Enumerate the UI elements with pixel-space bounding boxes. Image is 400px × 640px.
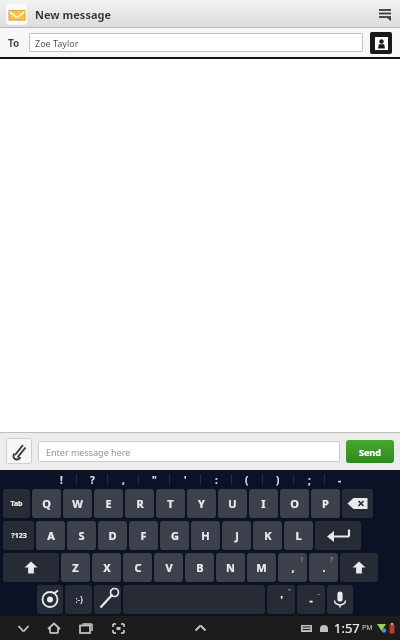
button[interactable]: - [325, 470, 355, 489]
button[interactable]: L [284, 521, 313, 550]
staticText: : [215, 473, 218, 487]
button[interactable]: Q [32, 489, 61, 518]
staticText: H [201, 528, 210, 543]
button[interactable]: G [160, 521, 189, 550]
button[interactable]: ?123 [3, 521, 34, 550]
button[interactable]: P [311, 489, 340, 518]
button[interactable]: Enter message here [38, 441, 340, 462]
staticText: Send [359, 446, 381, 458]
staticText: ! [301, 555, 303, 565]
button[interactable]: U [218, 489, 247, 518]
button[interactable]: E [94, 489, 123, 518]
staticText: V [165, 560, 173, 575]
button[interactable]: N [216, 553, 245, 582]
staticText: Q [42, 496, 51, 511]
button[interactable]: Zoe Taylor [29, 33, 363, 52]
staticText: C [134, 560, 142, 575]
button[interactable]: Screenshot [102, 616, 134, 640]
button[interactable]: B [185, 553, 214, 582]
staticText: B [196, 560, 204, 575]
button[interactable]: , [278, 553, 307, 582]
button[interactable]: Key [315, 521, 361, 550]
staticText: - [309, 593, 313, 607]
button[interactable]: - [297, 585, 325, 614]
staticText: K [264, 528, 272, 543]
button[interactable]: R [125, 489, 154, 518]
button[interactable]: Back [8, 616, 38, 640]
staticText: R [136, 496, 144, 511]
button[interactable]: H [191, 521, 220, 550]
staticText: O [290, 496, 299, 511]
button[interactable]: ) [263, 470, 293, 489]
button[interactable]: Messaging [6, 4, 27, 25]
button[interactable]: ? [77, 470, 107, 489]
button[interactable]: Hide keyboard [185, 616, 215, 640]
button[interactable]: Choose contact [370, 32, 392, 54]
button[interactable]: Key [340, 553, 378, 582]
staticText: ?123 [11, 531, 27, 541]
button[interactable]: M [247, 553, 276, 582]
button[interactable]: Key [3, 553, 59, 582]
button[interactable]: F [129, 521, 158, 550]
staticText: Zoe Taylor [35, 37, 79, 49]
button[interactable]: More options [370, 0, 400, 28]
button[interactable]: " [139, 470, 169, 489]
button[interactable]: Send [346, 440, 394, 463]
staticText: Enter message here [46, 446, 131, 458]
button[interactable]: , [108, 470, 138, 489]
button[interactable]: T [156, 489, 185, 518]
button[interactable]: D [98, 521, 127, 550]
button[interactable]: Recent apps [70, 616, 102, 640]
button[interactable]: A [36, 521, 65, 550]
button[interactable]: : [201, 470, 231, 489]
staticText: , [291, 560, 295, 575]
button[interactable]: Key [342, 489, 373, 518]
staticText: L [295, 528, 302, 543]
button[interactable]: S [67, 521, 96, 550]
staticText: T [167, 496, 174, 511]
staticText: N [226, 560, 235, 575]
button[interactable]: Home [38, 616, 70, 640]
button[interactable]: C [123, 553, 152, 582]
button[interactable]: Status [301, 619, 395, 637]
staticText: ' [280, 593, 283, 607]
staticText: S [78, 528, 85, 543]
button[interactable]: K [253, 521, 282, 550]
button[interactable]: O [280, 489, 309, 518]
button[interactable]: ; [294, 470, 324, 489]
staticText: . [322, 560, 326, 575]
staticText: " [288, 587, 291, 597]
button[interactable]: ! [46, 470, 76, 489]
staticText: M [256, 560, 267, 575]
button[interactable]: V [154, 553, 183, 582]
button[interactable]: ( [232, 470, 262, 489]
button[interactable]: W [63, 489, 92, 518]
button[interactable]: Tab [3, 489, 30, 518]
button[interactable]: Y [187, 489, 216, 518]
staticText: ) [276, 473, 280, 487]
button[interactable]: Key [37, 585, 63, 614]
staticText: PM [362, 623, 373, 633]
staticText: J [235, 528, 239, 543]
staticText: Z [72, 560, 79, 575]
button[interactable]: Key [94, 585, 121, 614]
staticText: ! [60, 473, 63, 487]
button[interactable]: X [92, 553, 121, 582]
button[interactable]: ' [170, 470, 200, 489]
button[interactable]: Z [61, 553, 90, 582]
button[interactable]: . [309, 553, 338, 582]
button[interactable]: I [249, 489, 278, 518]
button[interactable]: ' [267, 585, 295, 614]
button[interactable]: Attach [6, 438, 32, 464]
button[interactable]: J [222, 521, 251, 550]
button[interactable]: :-) [65, 585, 92, 614]
staticText: - [338, 473, 342, 487]
staticText: :-) [75, 594, 83, 605]
staticText: " [152, 473, 157, 487]
staticText: Y [198, 496, 205, 511]
staticText: U [228, 496, 237, 511]
staticText: ? [330, 555, 334, 565]
button[interactable]: Key [327, 585, 353, 614]
staticText: ? [90, 473, 95, 487]
